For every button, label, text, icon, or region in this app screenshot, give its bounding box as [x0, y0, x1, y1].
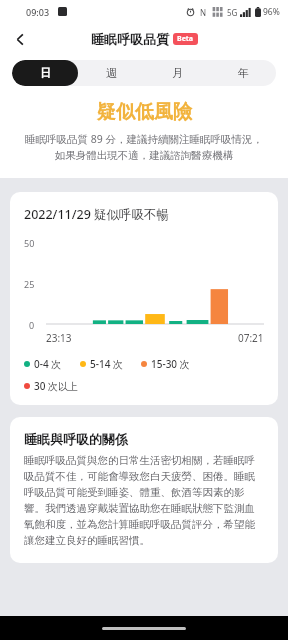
staticText: Beta [177, 34, 194, 44]
staticText: 07:21 [238, 331, 264, 345]
staticText: 月 [172, 66, 183, 80]
staticText: 睡眠呼吸品質 89 分，建議持續關注睡眠呼吸情況，如果身體出現不適，建議諮詢醫療… [22, 132, 266, 162]
staticText: 25 [24, 278, 35, 290]
staticText: 年 [238, 66, 249, 80]
staticText: 日 [40, 66, 51, 80]
button[interactable]: 日 [12, 60, 78, 86]
staticText: 0 [29, 319, 35, 329]
staticText: 96% [263, 6, 280, 18]
button[interactable]: 週 [78, 60, 144, 86]
staticText: 睡眠呼吸品質 [91, 31, 169, 47]
staticText: 5G [227, 7, 238, 18]
staticText: 疑似低風險 [97, 100, 192, 124]
staticText: 0-4 次 [34, 357, 62, 371]
staticText: 睡眠與呼吸的關係 [24, 431, 128, 447]
staticText: 15-30 次 [151, 357, 190, 371]
staticText: 50 [24, 237, 35, 249]
staticText: 週 [106, 66, 117, 80]
staticText: N [200, 7, 207, 18]
staticText: 09:03 [26, 6, 50, 18]
button[interactable]: Back [6, 25, 34, 53]
staticText: 30 次以上 [34, 379, 79, 393]
staticText: 2022/11/29 疑似呼吸不暢 [24, 206, 170, 223]
staticText: 5-14 次 [90, 357, 123, 371]
staticText: 睡眠呼吸品質與您的日常生活密切相關，若睡眠呼吸品質不佳，可能會導致您白天疲勞、困… [24, 454, 264, 547]
button[interactable]: 年 [210, 60, 276, 86]
button[interactable]: 月 [144, 60, 210, 86]
staticText: 23:13 [46, 331, 72, 345]
